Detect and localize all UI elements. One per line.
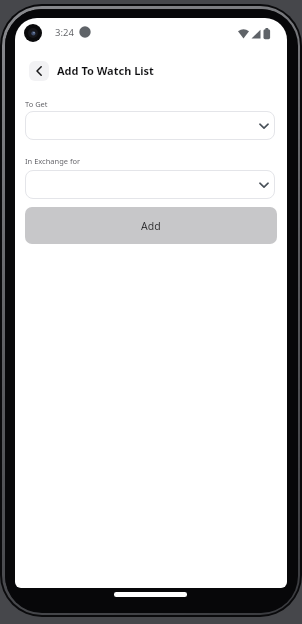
staticText: 3:24 <box>55 26 74 39</box>
button[interactable] <box>29 61 49 81</box>
staticText: To Get <box>25 99 48 109</box>
button[interactable] <box>25 111 275 140</box>
staticText: In Exchange for <box>25 156 81 166</box>
staticText: Add <box>141 219 161 233</box>
button[interactable]: Add <box>25 207 277 244</box>
button[interactable] <box>25 170 275 199</box>
staticText: Add To Watch List <box>57 63 154 78</box>
